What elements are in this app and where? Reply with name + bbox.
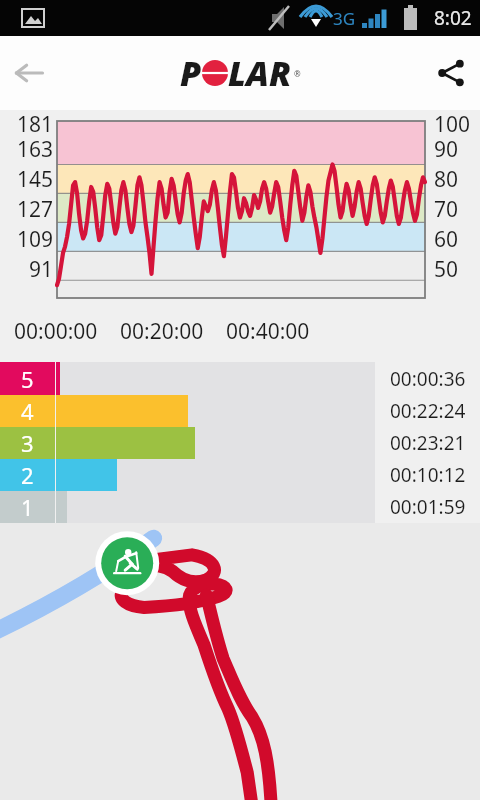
staticText: 00:20:00 <box>120 317 204 346</box>
staticText: LAR <box>228 50 292 96</box>
button[interactable]: 5 <box>0 362 480 395</box>
staticText: 109 <box>17 225 54 254</box>
staticText: 00:40:00 <box>226 317 310 346</box>
staticText: 100 <box>434 110 471 134</box>
staticText: 145 <box>17 165 54 194</box>
staticText: 3 <box>21 428 34 458</box>
staticText: 5 <box>21 364 34 394</box>
button[interactable] <box>0 523 480 800</box>
staticText: 163 <box>17 135 54 164</box>
staticText: 8:02 <box>434 5 472 31</box>
button[interactable]: Back <box>0 44 58 102</box>
staticText: 00:00:00 <box>14 317 98 346</box>
staticText: 3G <box>333 7 356 30</box>
staticText: 70 <box>434 195 459 224</box>
staticText: 00:01:59 <box>390 494 466 520</box>
button[interactable]: Share <box>422 44 480 102</box>
button[interactable]: 4 <box>0 395 480 427</box>
button[interactable]: 1 <box>0 491 480 523</box>
staticText: 127 <box>17 195 54 224</box>
staticText: 90 <box>434 135 459 164</box>
staticText: 00:22:24 <box>390 398 466 424</box>
staticText: 60 <box>434 225 459 254</box>
staticText: 4 <box>21 396 34 426</box>
staticText: 00:00:36 <box>390 366 466 392</box>
staticText: 00:10:12 <box>390 462 466 488</box>
button[interactable]: 2 <box>0 459 480 491</box>
button[interactable]: 3 <box>0 427 480 459</box>
staticText: 50 <box>434 255 459 284</box>
staticText: 1 <box>21 492 34 522</box>
staticText: P <box>180 50 202 96</box>
staticText: 2 <box>21 460 34 490</box>
staticText: 00:23:21 <box>390 430 466 456</box>
staticText: ® <box>294 68 301 79</box>
staticText: 181 <box>17 110 54 134</box>
staticText: 80 <box>434 165 459 194</box>
staticText: 91 <box>29 255 54 284</box>
